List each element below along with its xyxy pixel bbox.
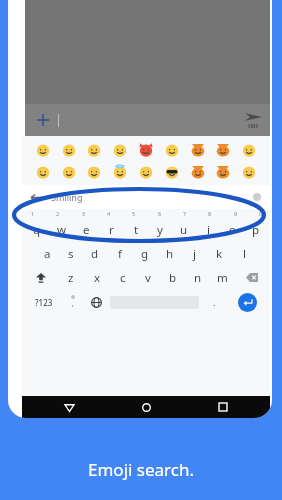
staticText: a <box>44 246 51 262</box>
staticText: 7 <box>183 210 187 217</box>
staticText: t <box>134 222 139 238</box>
button[interactable]: Add attachment <box>33 110 53 130</box>
button[interactable]: r <box>99 219 124 240</box>
button[interactable]: Emoji <box>111 141 129 159</box>
staticText: r <box>109 222 114 238</box>
button[interactable]: Emoji <box>163 163 181 181</box>
staticText: x <box>94 270 101 286</box>
staticText: n <box>194 270 202 286</box>
staticText: 6 <box>158 210 162 217</box>
button[interactable]: c <box>110 267 135 288</box>
button[interactable]: v <box>135 267 160 288</box>
staticText: c <box>120 270 126 286</box>
button[interactable]: Comma <box>62 291 84 313</box>
staticText: i <box>207 222 210 238</box>
button[interactable]: Emoji <box>240 141 258 159</box>
button[interactable]: z <box>58 267 84 288</box>
staticText: k <box>216 246 223 262</box>
button[interactable]: Emoji <box>34 163 52 181</box>
staticText: . <box>213 296 216 308</box>
staticText: 8 <box>208 210 212 217</box>
button[interactable]: Emoji <box>240 163 258 181</box>
button[interactable]: Shift <box>24 267 58 288</box>
button[interactable]: Emoji <box>34 141 52 159</box>
button[interactable]: Back <box>58 396 80 418</box>
button[interactable]: Emoji <box>85 141 103 159</box>
staticText: z <box>68 270 74 286</box>
button[interactable]: h <box>157 243 182 264</box>
staticText: d <box>91 246 99 262</box>
button[interactable]: a <box>35 243 59 264</box>
button[interactable]: Enter <box>228 291 266 313</box>
button[interactable]: ?123 <box>26 291 62 313</box>
staticText: y <box>157 222 163 238</box>
button[interactable]: Emoji <box>189 141 207 159</box>
button[interactable]: q <box>24 219 49 240</box>
staticText: Smiling <box>51 191 83 203</box>
button[interactable]: Emoji <box>111 163 129 181</box>
button[interactable]: p <box>244 219 268 240</box>
button[interactable]: w <box>49 219 74 240</box>
button[interactable]: Emoji <box>60 141 78 159</box>
button[interactable]: Emoji <box>137 141 155 159</box>
staticText: h <box>166 246 174 262</box>
button[interactable]: Emoji <box>214 141 232 159</box>
staticText: p <box>252 222 260 238</box>
staticText: 5 <box>132 210 136 217</box>
button[interactable]: . <box>201 291 228 313</box>
staticText: 0 <box>259 210 263 217</box>
staticText: 9 <box>234 210 238 217</box>
staticText: SMS <box>248 123 259 130</box>
staticText: v <box>145 270 151 286</box>
staticText: e <box>83 222 90 238</box>
staticText: 3 <box>82 210 86 217</box>
button[interactable]: Smiling <box>31 185 261 209</box>
staticText: , <box>72 299 74 309</box>
staticText: 1 <box>31 210 35 217</box>
button[interactable]: Emoji <box>214 163 232 181</box>
button[interactable]: u <box>172 219 196 240</box>
staticText: 2 <box>56 210 60 217</box>
staticText: m <box>217 270 228 286</box>
staticText: 4 <box>107 210 111 217</box>
button[interactable]: s <box>59 243 83 264</box>
button[interactable]: x <box>84 267 110 288</box>
button[interactable]: e <box>74 219 99 240</box>
staticText: w <box>57 222 67 238</box>
staticText: l <box>243 246 246 262</box>
button[interactable]: Emoji <box>163 141 181 159</box>
staticText: f <box>118 246 122 262</box>
button[interactable]: m <box>210 267 235 288</box>
button[interactable]: Emoji <box>60 163 78 181</box>
button[interactable]: j <box>182 243 207 264</box>
button[interactable]: Emoji <box>85 163 103 181</box>
button[interactable]: k <box>207 243 232 264</box>
staticText: q <box>33 222 41 238</box>
staticText: u <box>180 222 188 238</box>
button[interactable]: f <box>107 243 132 264</box>
button[interactable]: i <box>196 219 220 240</box>
button[interactable]: Send SMS <box>245 111 262 130</box>
button[interactable]: Backspace <box>235 267 268 288</box>
button[interactable]: l <box>232 243 257 264</box>
staticText: b <box>169 270 177 286</box>
button[interactable]: o <box>220 219 244 240</box>
button[interactable]: n <box>185 267 210 288</box>
button[interactable]: Home <box>135 396 157 418</box>
button[interactable]: y <box>148 219 172 240</box>
button[interactable]: Emoji <box>189 163 207 181</box>
staticText: Emoji search. <box>88 458 194 481</box>
staticText: o <box>229 222 236 238</box>
staticText: j <box>193 246 196 262</box>
button[interactable]: d <box>83 243 107 264</box>
button[interactable]: g <box>132 243 157 264</box>
button[interactable]: Emoji <box>137 163 155 181</box>
button[interactable]: b <box>160 267 185 288</box>
button[interactable]: t <box>124 219 148 240</box>
staticText: ?123 <box>35 297 53 308</box>
button[interactable]: Recent apps <box>212 396 234 418</box>
staticText: g <box>141 246 149 262</box>
button[interactable]: Change language <box>84 291 108 313</box>
staticText: s <box>68 246 74 262</box>
